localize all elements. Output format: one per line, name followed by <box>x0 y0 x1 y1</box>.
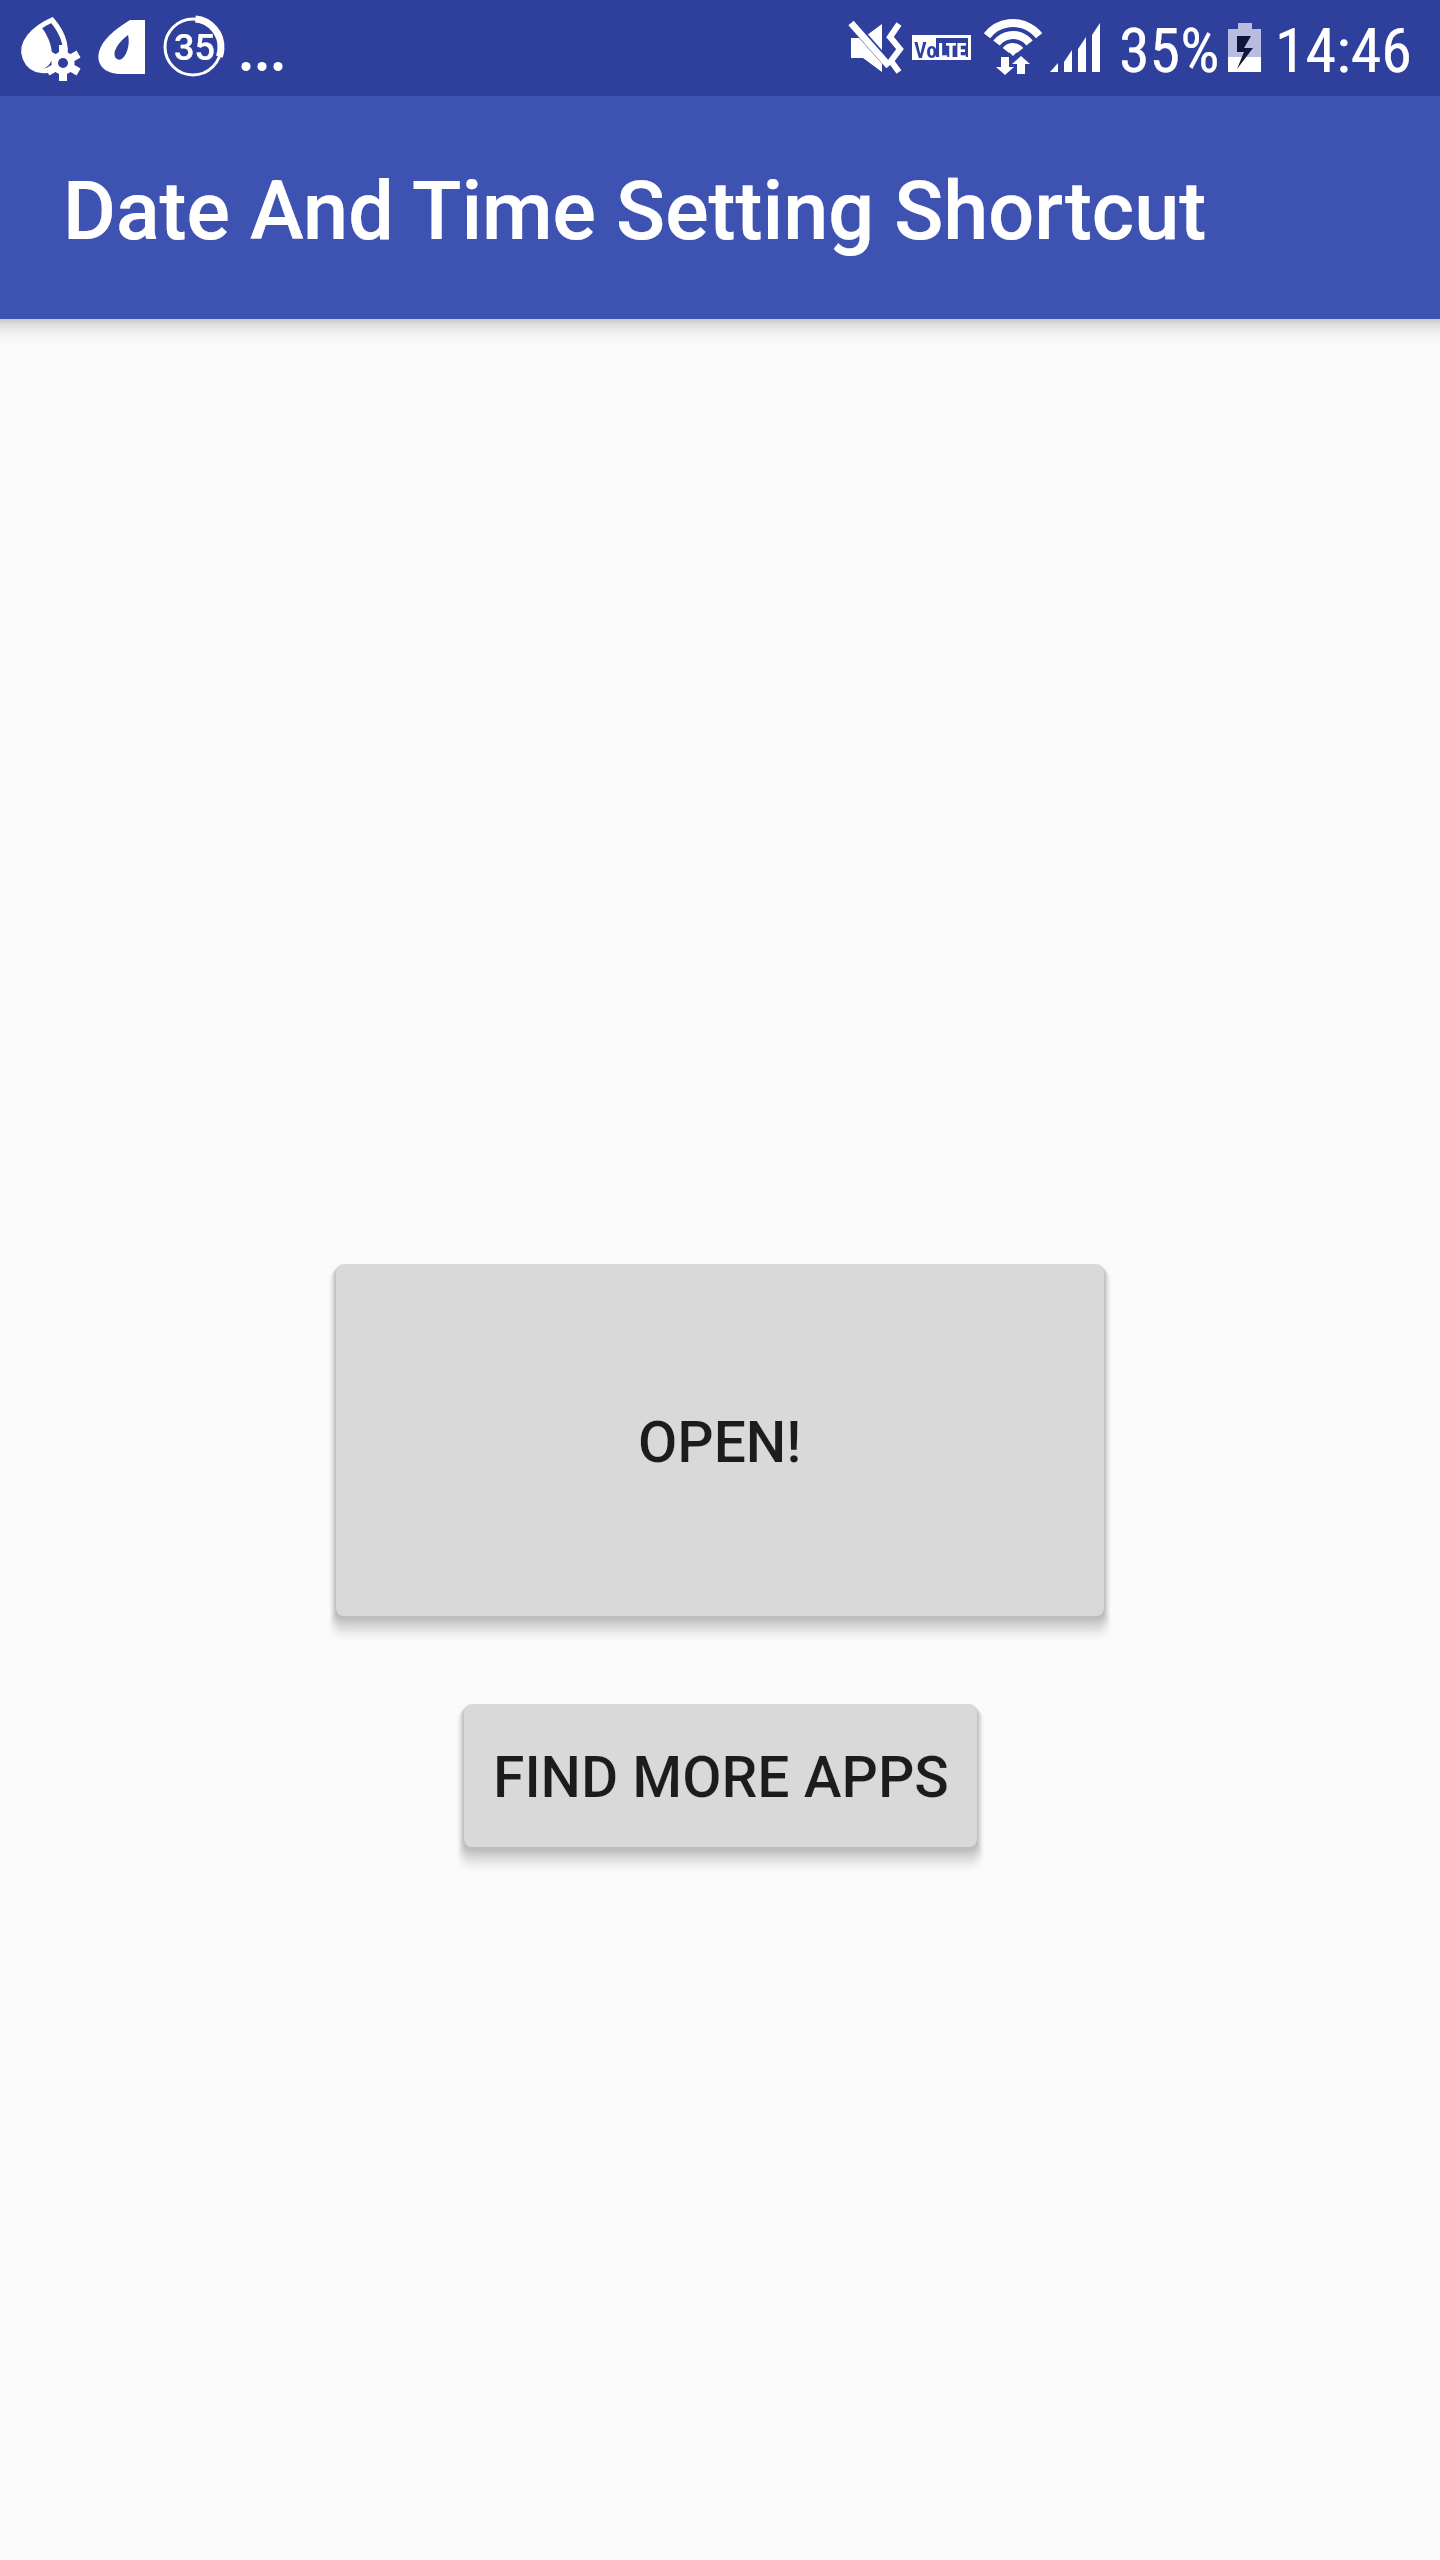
staticText: 35 <box>174 27 215 69</box>
staticText: LTE <box>938 39 967 62</box>
staticText: 14:46 <box>1275 14 1412 87</box>
staticText: 35% <box>1119 14 1220 87</box>
button[interactable]: OPEN! <box>336 1264 1104 1616</box>
staticText: FIND MORE APPS <box>493 1744 949 1811</box>
button[interactable]: FIND MORE APPS <box>464 1704 977 1847</box>
staticText: OPEN! <box>638 1409 802 1476</box>
other: Status bar <box>0 0 1440 96</box>
staticText: Vo <box>914 38 938 64</box>
staticText: Date And Time Setting Shortcut <box>63 164 1207 259</box>
